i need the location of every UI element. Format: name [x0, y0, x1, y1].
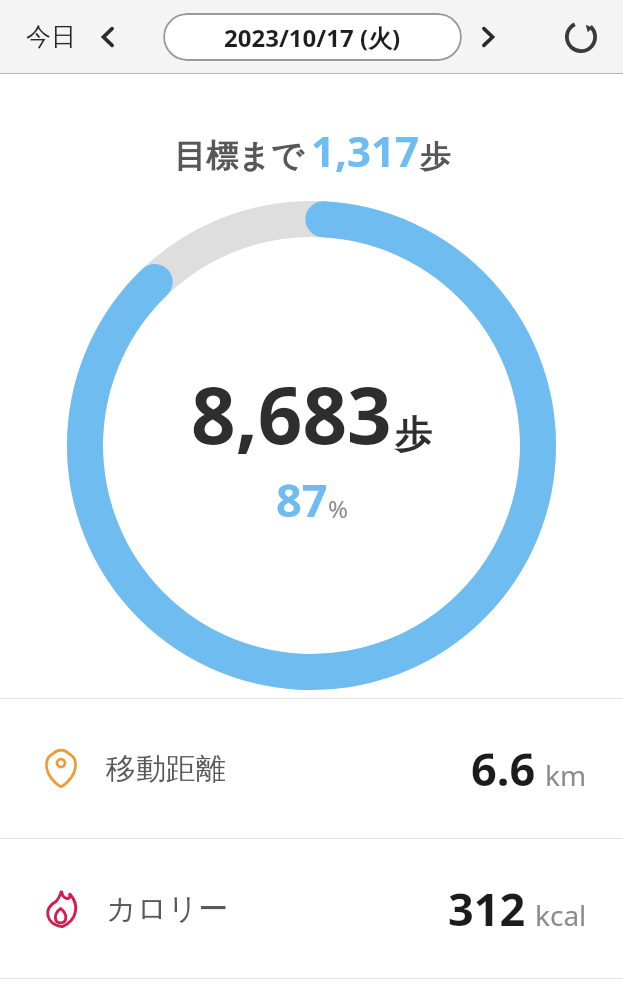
button[interactable]: 今日: [12, 12, 90, 61]
staticText: 歩: [395, 411, 432, 458]
button[interactable]: Previous day: [84, 14, 130, 60]
button[interactable]: カロリー: [0, 839, 623, 978]
button[interactable]: 移動距離: [0, 699, 623, 838]
staticText: 移動距離: [106, 750, 226, 788]
staticText: 目標まで: [174, 136, 304, 176]
staticText: 8,683: [191, 361, 392, 467]
button[interactable]: Next day: [466, 14, 512, 60]
button[interactable]: 2023/10/17 (火): [163, 13, 462, 61]
staticText: %: [328, 492, 348, 525]
staticText: カロリー: [106, 890, 229, 928]
staticText: 今日: [26, 21, 76, 52]
staticText: kcal: [535, 896, 587, 934]
staticText: 2023/10/17 (火): [224, 21, 401, 54]
staticText: 歩: [420, 138, 450, 176]
staticText: 1,317: [311, 122, 420, 179]
button[interactable]: Refresh: [554, 10, 608, 64]
staticText: 312: [448, 878, 526, 939]
staticText: 87: [276, 469, 328, 530]
staticText: 6.6: [471, 738, 536, 799]
staticText: km: [545, 756, 587, 794]
